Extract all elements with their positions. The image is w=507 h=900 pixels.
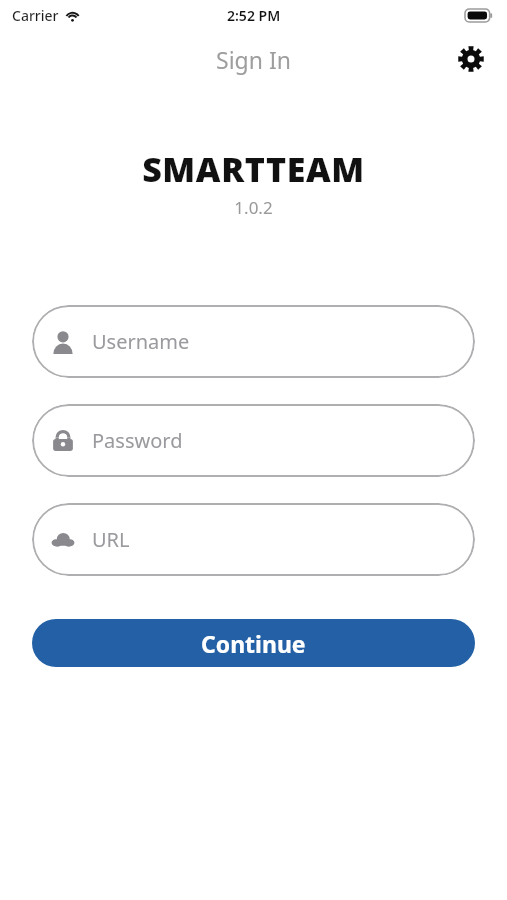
staticText: Password <box>92 427 183 454</box>
staticText: Carrier <box>12 6 59 25</box>
button[interactable]: Continue <box>32 619 475 667</box>
staticText: Sign In <box>216 44 291 75</box>
button[interactable]: Username <box>32 305 475 378</box>
staticText: Continue <box>201 628 306 659</box>
button[interactable]: Password <box>32 404 475 477</box>
staticText: 2:52 PM <box>227 6 281 25</box>
staticText: SMARTTEAM <box>142 146 365 192</box>
button[interactable]: Settings <box>449 37 493 81</box>
staticText: 1.0.2 <box>234 196 273 219</box>
button[interactable]: URL <box>32 503 475 576</box>
staticText: Username <box>92 328 190 355</box>
staticText: URL <box>92 526 130 553</box>
